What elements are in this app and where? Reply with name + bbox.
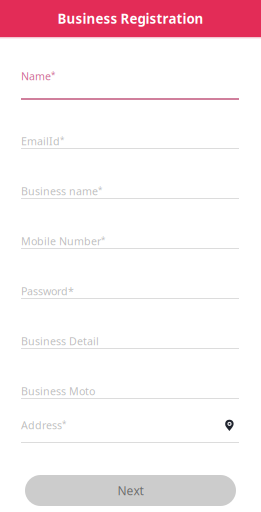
button[interactable]: Address* — [21, 399, 239, 443]
button[interactable]: Business Detail — [21, 299, 239, 349]
staticText: Business Detail — [21, 334, 99, 348]
button[interactable]: Business Moto — [21, 349, 239, 399]
staticText: Address* — [21, 418, 66, 432]
button[interactable]: Name* — [21, 39, 239, 100]
button[interactable]: Next — [25, 475, 236, 506]
button[interactable]: Mobile Number* — [21, 199, 239, 249]
staticText: EmailId* — [21, 134, 64, 148]
staticText: Mobile Number* — [21, 234, 105, 248]
staticText: Next — [117, 482, 143, 498]
staticText: Business Moto — [21, 384, 95, 398]
button[interactable]: EmailId* — [21, 100, 239, 149]
button[interactable]: Password* — [21, 249, 239, 299]
staticText: Business Registration — [57, 10, 203, 27]
staticText: Password* — [21, 284, 74, 298]
staticText: Name* — [21, 69, 55, 83]
button[interactable]: Business name* — [21, 149, 239, 199]
staticText: Business name* — [21, 184, 102, 198]
